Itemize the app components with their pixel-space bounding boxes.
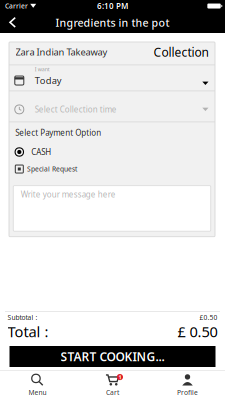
- staticText: Carrier: [5, 2, 28, 10]
- button[interactable]: 1: [75, 371, 150, 400]
- staticText: Special Request: [27, 165, 77, 173]
- button[interactable]: Back: [0, 12, 26, 33]
- staticText: CASH: [31, 147, 51, 157]
- staticText: 1: [118, 373, 121, 381]
- staticText: Cart: [106, 388, 119, 397]
- button[interactable]: I want: [9, 65, 215, 90]
- staticText: Write your message here: [21, 189, 116, 200]
- button[interactable]: Select Collection time: [9, 91, 215, 121]
- staticText: £ 0.50: [177, 322, 217, 341]
- staticText: Total :: [7, 322, 48, 341]
- button[interactable]: Special Request: [9, 160, 215, 177]
- staticText: START COOKING...: [60, 348, 164, 364]
- staticText: Profile: [177, 388, 198, 397]
- button[interactable]: Menu: [0, 371, 75, 400]
- staticText: Menu: [28, 388, 46, 397]
- staticText: Subtotal :: [7, 313, 37, 322]
- staticText: Today: [35, 74, 62, 86]
- staticText: 6:10 PM: [97, 1, 128, 11]
- staticText: I want: [35, 65, 50, 73]
- staticText: Collection: [153, 44, 208, 60]
- button[interactable]: Profile: [150, 371, 225, 400]
- button[interactable]: START COOKING...: [9, 346, 215, 367]
- staticText: £0.50: [199, 313, 217, 322]
- staticText: Zara Indian Takeaway: [15, 46, 107, 58]
- button[interactable]: CASH: [9, 143, 215, 160]
- staticText: Select Collection time: [35, 104, 117, 115]
- staticText: Select Payment Option: [15, 127, 101, 138]
- staticText: Ingredients in the pot: [55, 15, 169, 30]
